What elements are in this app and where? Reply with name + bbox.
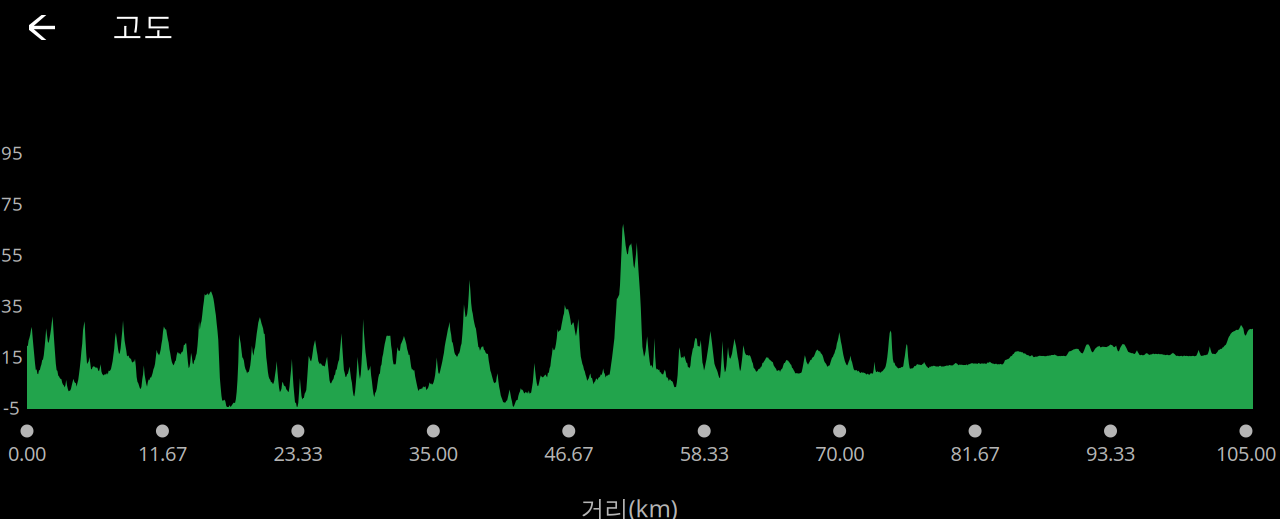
staticText: 거리(km) — [580, 492, 677, 519]
staticText: 105.00 — [1216, 440, 1276, 467]
staticText: 46.67 — [544, 440, 593, 467]
staticText: 95 — [1, 140, 23, 165]
staticText: 70.00 — [815, 440, 864, 467]
staticText: 58.33 — [680, 440, 729, 467]
staticText: 75 — [1, 191, 23, 216]
staticText: 11.67 — [138, 440, 187, 467]
staticText: 93.33 — [1086, 440, 1135, 467]
staticText: -5 — [3, 395, 20, 420]
button[interactable]: Back — [18, 4, 66, 51]
staticText: 15 — [1, 344, 23, 369]
staticText: 고도 — [112, 8, 174, 46]
staticText: 35.00 — [409, 440, 458, 467]
staticText: 23.33 — [273, 440, 322, 467]
staticText: 81.67 — [951, 440, 1000, 467]
staticText: 35 — [1, 293, 23, 318]
staticText: 55 — [1, 242, 23, 267]
staticText: 0.00 — [8, 440, 46, 467]
